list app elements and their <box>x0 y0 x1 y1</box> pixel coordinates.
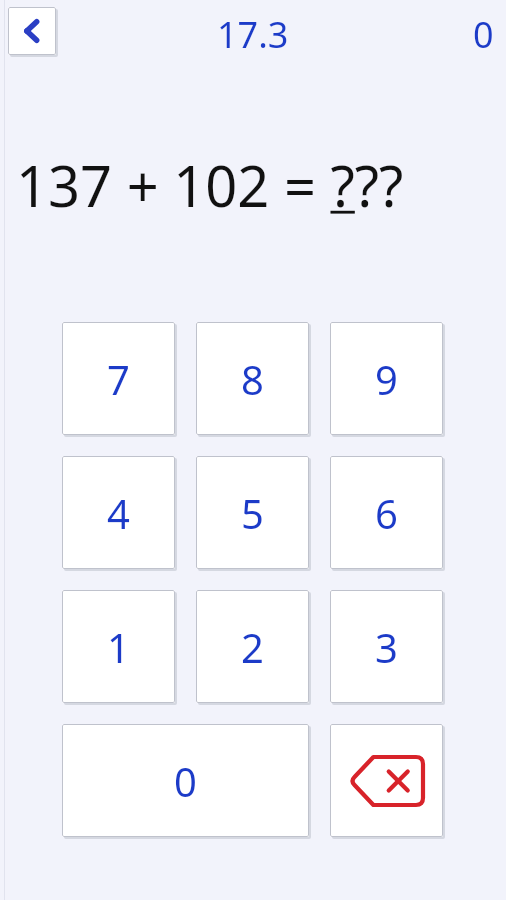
staticText: 0 <box>473 10 494 59</box>
button[interactable]: 9 <box>330 322 443 435</box>
staticText: 7 <box>107 352 130 406</box>
button[interactable]: 4 <box>62 456 175 569</box>
button[interactable]: 5 <box>196 456 309 569</box>
button[interactable]: Back <box>8 7 56 55</box>
staticText: 1 <box>107 620 130 674</box>
staticText: 6 <box>375 486 398 540</box>
button[interactable]: Backspace <box>330 724 443 837</box>
button[interactable]: 1 <box>62 590 175 703</box>
staticText: 9 <box>375 352 398 406</box>
staticText: 0 <box>174 754 197 808</box>
staticText: 3 <box>375 620 398 674</box>
button[interactable]: 7 <box>62 322 175 435</box>
staticText: 5 <box>241 486 264 540</box>
button[interactable]: 2 <box>196 590 309 703</box>
staticText: 8 <box>241 352 264 406</box>
button[interactable]: 6 <box>330 456 443 569</box>
staticText: 17.3 <box>217 10 289 59</box>
staticText: 2 <box>241 620 264 674</box>
button[interactable]: 3 <box>330 590 443 703</box>
button[interactable]: 8 <box>196 322 309 435</box>
staticText: 4 <box>107 486 130 540</box>
staticText: 137 + 102 = ??? <box>16 147 404 223</box>
button[interactable]: 0 <box>62 724 309 837</box>
